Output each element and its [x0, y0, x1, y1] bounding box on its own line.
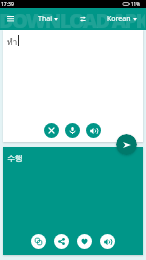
- staticText: Korean: [107, 14, 131, 24]
- button[interactable]: Menu: [0, 8, 20, 30]
- staticText: 17:39: [1, 1, 14, 8]
- button[interactable]: Translate: [116, 134, 137, 155]
- staticText: Thai: [38, 14, 52, 24]
- staticText: DOWNLOAD APK: [0, 8, 145, 29]
- button[interactable]: Korean: [97, 8, 146, 30]
- staticText: 수행: [7, 153, 23, 163]
- staticText: ทำ: [7, 35, 18, 49]
- button[interactable]: Voice input: [65, 123, 80, 138]
- button[interactable]: Clear: [44, 123, 59, 138]
- button[interactable]: Listen to source: [86, 123, 101, 138]
- button[interactable]: Share: [54, 234, 69, 249]
- button[interactable]: Listen to translation: [100, 234, 115, 249]
- button[interactable]: Add to favourites: [77, 234, 92, 249]
- button[interactable]: Copy: [31, 234, 46, 249]
- button[interactable]: Swap languages: [74, 8, 92, 30]
- button[interactable]: Thai: [26, 8, 70, 30]
- staticText: 11%: [131, 1, 140, 7]
